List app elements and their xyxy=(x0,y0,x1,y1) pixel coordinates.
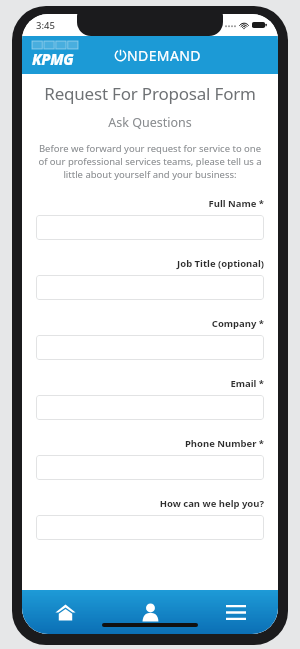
button[interactable]: Menu xyxy=(193,590,278,634)
button[interactable]: Job Title (optional) xyxy=(36,275,264,300)
button[interactable]: Email * xyxy=(36,395,264,420)
button[interactable]: Full Name * xyxy=(36,215,264,240)
button[interactable]: Phone Number * xyxy=(36,455,264,480)
button[interactable]: Company * xyxy=(36,335,264,360)
staticText: How can we help you? xyxy=(36,497,264,510)
staticText: Full Name * xyxy=(36,197,264,210)
staticText: Job Title (optional) xyxy=(36,257,264,270)
staticText: Before we forward your request for servi… xyxy=(36,142,264,181)
button[interactable]: Profile xyxy=(108,590,193,634)
staticText: Phone Number * xyxy=(36,437,264,450)
button[interactable]: KPMG home xyxy=(30,39,80,71)
staticText: NDEMAND xyxy=(127,46,201,65)
staticText: KPMG xyxy=(32,49,74,69)
staticText: Ask Questions xyxy=(36,114,264,131)
staticText: Company * xyxy=(36,317,264,330)
button[interactable]: How can we help you? xyxy=(36,515,264,540)
staticText: Request For Proposal Form xyxy=(36,82,264,105)
staticText: Email * xyxy=(36,377,264,390)
staticText: 3:45 xyxy=(36,19,55,32)
button[interactable]: Home xyxy=(22,590,108,634)
